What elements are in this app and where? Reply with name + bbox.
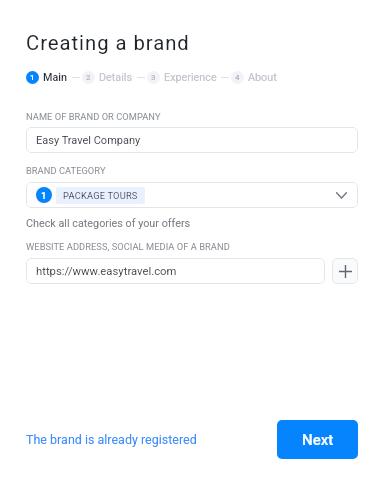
staticText: Experience — [164, 71, 217, 84]
staticText: https://www.easytravel.com — [36, 265, 177, 278]
button[interactable]: 2 — [82, 71, 133, 84]
button[interactable]: Next — [277, 420, 358, 459]
staticText: NAME OF BRAND OR COMPANY — [26, 111, 161, 122]
staticText: 1 — [30, 73, 35, 82]
button[interactable]: The brand is already registered — [20, 426, 203, 453]
staticText: The brand is already registered — [26, 432, 197, 447]
staticText: 2 — [86, 73, 91, 82]
staticText: BRAND CATEGORY — [26, 165, 106, 176]
staticText: 3 — [151, 73, 156, 82]
button[interactable]: 1 — [26, 71, 68, 84]
staticText: Easy Travel Company — [36, 134, 141, 147]
button[interactable]: https://www.easytravel.com — [26, 258, 325, 284]
button[interactable]: Easy Travel Company — [26, 127, 358, 153]
staticText: Check all categories of your offers — [26, 217, 191, 230]
button[interactable]: 1 — [26, 182, 358, 208]
staticText: About — [248, 71, 277, 84]
staticText: Details — [99, 71, 133, 84]
button[interactable]: 4 — [231, 71, 277, 84]
staticText: Creating a brand — [26, 31, 190, 55]
staticText: WEBSITE ADDRESS, SOCIAL MEDIA OF A BRAND — [26, 241, 230, 252]
staticText: PACKAGE TOURS — [63, 190, 138, 201]
staticText: 4 — [235, 73, 240, 82]
button[interactable]: 3 — [147, 71, 217, 84]
button[interactable]: Add another address — [332, 258, 358, 284]
staticText: Next — [302, 431, 334, 449]
staticText: 1 — [41, 190, 47, 201]
staticText: Main — [43, 71, 68, 84]
